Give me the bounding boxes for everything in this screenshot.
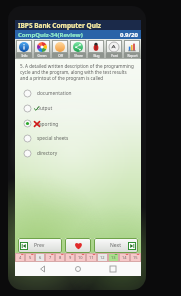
button[interactable]: Info: [16, 40, 32, 58]
staticText: 0.9/20: [120, 31, 138, 39]
button[interactable]: directory: [20, 146, 136, 161]
button[interactable]: 12: [97, 253, 108, 262]
staticText: Green: [37, 54, 47, 58]
staticText: 14: [122, 255, 127, 260]
button[interactable]: reporting: [20, 116, 136, 131]
staticText: Bug: [93, 54, 100, 58]
staticText: 4: [19, 255, 22, 260]
button[interactable]: 10: [75, 253, 86, 262]
staticText: 10: [78, 255, 83, 260]
button[interactable]: 14: [119, 253, 130, 262]
staticText: 5. A detailed written description of the…: [20, 63, 136, 81]
button[interactable]: Prev: [18, 238, 62, 253]
button[interactable]: Off: [52, 40, 68, 58]
button[interactable]: Share: [70, 40, 86, 58]
button[interactable]: 5: [25, 253, 35, 262]
staticText: reporting: [37, 121, 59, 128]
staticText: 15: [133, 255, 138, 260]
button[interactable]: 15: [130, 253, 141, 262]
staticText: Info: [21, 54, 28, 58]
staticText: CompQuiz-34(Review): [18, 31, 83, 39]
staticText: 8: [59, 255, 62, 260]
button[interactable]: 6: [35, 253, 45, 262]
staticText: Share: [74, 54, 83, 58]
button[interactable]: Recents: [106, 262, 120, 276]
button[interactable]: special sheets: [20, 131, 136, 146]
staticText: 6: [39, 255, 42, 260]
staticText: output: [37, 105, 53, 112]
staticText: Report: [127, 54, 138, 58]
button[interactable]: 13: [108, 253, 119, 262]
staticText: documentation: [37, 90, 72, 97]
button[interactable]: Bug: [88, 40, 104, 58]
button[interactable]: 7: [45, 253, 55, 262]
staticText: directory: [37, 150, 58, 157]
button[interactable]: 4: [15, 253, 25, 262]
button[interactable]: Next: [94, 238, 138, 253]
button[interactable]: Green: [34, 40, 50, 58]
staticText: special sheets: [37, 135, 69, 142]
button[interactable]: Favorite: [65, 238, 91, 253]
staticText: 5: [29, 255, 32, 260]
staticText: Next: [110, 242, 121, 249]
button[interactable]: documentation: [20, 86, 136, 101]
button[interactable]: 11: [86, 253, 97, 262]
button[interactable]: Home: [71, 262, 85, 276]
button[interactable]: Font: [106, 40, 122, 58]
button[interactable]: Back: [36, 262, 50, 276]
staticText: 9: [69, 255, 72, 260]
staticText: 13: [111, 255, 116, 260]
staticText: Off: [58, 54, 63, 58]
staticText: 11: [89, 255, 94, 260]
button[interactable]: 8: [55, 253, 65, 262]
staticText: Prev: [34, 242, 45, 249]
button[interactable]: output: [20, 101, 136, 116]
button[interactable]: 9: [65, 253, 75, 262]
staticText: IBPS Bank Computer Quiz: [18, 21, 102, 30]
button[interactable]: Report: [124, 40, 140, 58]
staticText: 12: [100, 255, 105, 260]
staticText: Font: [111, 54, 118, 58]
staticText: 7: [49, 255, 52, 260]
